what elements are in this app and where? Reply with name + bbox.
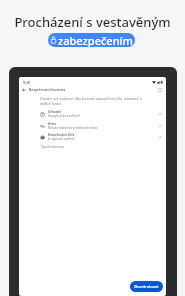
staticText: Chraňte své soukromí díky kontrole zabez… <box>40 96 144 106</box>
button[interactable]: Bezpečnostní klíče <box>40 132 162 142</box>
button[interactable]: Zkontrolovat <box>130 281 163 292</box>
staticText: Je zapnuté ověření <box>48 137 75 141</box>
staticText: Bezpečnostní kontrola <box>29 87 66 92</box>
button[interactable]: Hesla <box>40 121 162 131</box>
staticText: Uživatelé <box>48 110 62 114</box>
button[interactable]: Uživatelé <box>40 109 162 119</box>
button[interactable]: zabezpečením <box>48 33 135 47</box>
staticText: Nebyla nalezena prolomená hesla <box>48 126 98 130</box>
staticText: Spustit kontrolu <box>41 145 65 149</box>
button[interactable]: Back <box>20 86 28 94</box>
staticText: Google účet a zařízení <box>48 114 81 118</box>
staticText: Zkontrolovat <box>134 284 159 289</box>
staticText: Hesla <box>48 122 56 126</box>
staticText: Procházení s vestavěným <box>14 13 171 31</box>
button[interactable]: Spustit kontrolu <box>41 145 65 149</box>
button[interactable]: Help <box>156 86 164 94</box>
staticText: Bezpečnostní klíče <box>48 133 75 137</box>
staticText: zabezpečením <box>58 33 133 47</box>
staticText: 9:30 <box>23 80 31 85</box>
